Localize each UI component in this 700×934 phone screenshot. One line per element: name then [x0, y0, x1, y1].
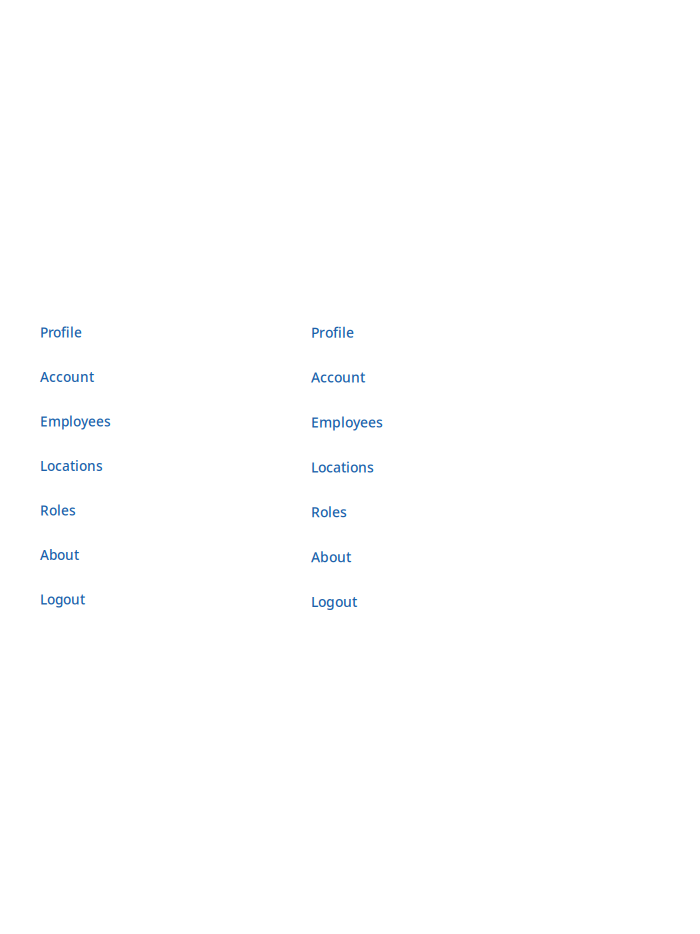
- staticText: Logout: [40, 590, 85, 608]
- staticText: Logout: [311, 592, 357, 611]
- staticText: Profile: [40, 323, 82, 341]
- staticText: Employees: [40, 412, 111, 430]
- staticText: Locations: [311, 458, 374, 476]
- staticText: Account: [311, 368, 365, 387]
- staticText: About: [40, 545, 79, 564]
- staticText: Roles: [40, 501, 76, 519]
- staticText: About: [311, 547, 351, 566]
- staticText: Account: [40, 367, 94, 386]
- staticText: Profile: [311, 323, 354, 342]
- staticText: Employees: [311, 413, 383, 432]
- staticText: Roles: [311, 502, 347, 521]
- staticText: Locations: [40, 456, 103, 475]
